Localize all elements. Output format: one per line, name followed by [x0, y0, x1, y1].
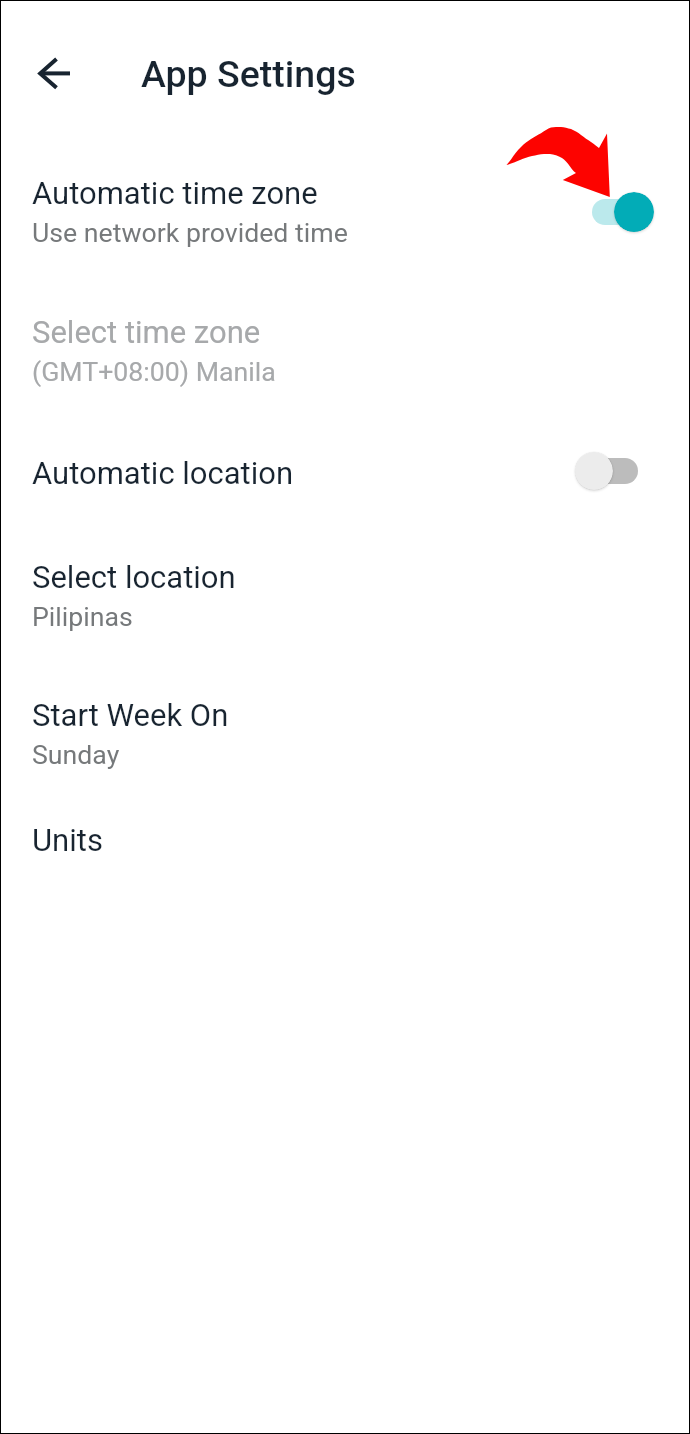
button[interactable]: Units [1, 798, 689, 882]
staticText: App Settings [141, 52, 356, 96]
button[interactable]: Start Week On [1, 673, 689, 794]
button[interactable]: Back [23, 43, 85, 105]
staticText: Units [32, 822, 103, 858]
staticText: Pilipinas [32, 601, 133, 632]
staticText: Start Week On [32, 697, 229, 733]
staticText: Automatic time zone [32, 175, 318, 211]
button[interactable]: Automatic time zone [1, 151, 689, 272]
staticText: Use network provided time [32, 217, 348, 248]
staticText: Select location [32, 559, 236, 595]
button[interactable]: Select location [1, 535, 689, 656]
staticText: Sunday [32, 739, 120, 770]
staticText: Automatic location [32, 455, 294, 491]
staticText: (GMT+08:00) Manila [32, 356, 276, 387]
button[interactable]: Automatic location toggle, off [575, 451, 645, 491]
button[interactable]: Automatic time zone toggle, on [584, 190, 654, 234]
button[interactable]: Select time zone [1, 290, 689, 411]
button[interactable]: Automatic location [1, 431, 689, 515]
staticText: Select time zone [32, 314, 261, 350]
